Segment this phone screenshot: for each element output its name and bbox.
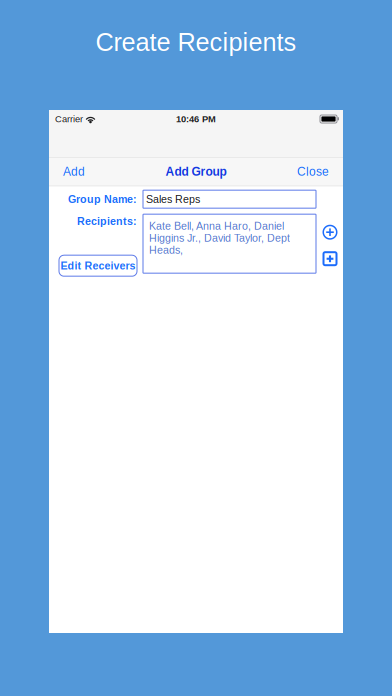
- button[interactable]: Edit Receivers: [59, 255, 137, 276]
- staticText: Create Recipients: [95, 28, 296, 56]
- staticText: Group Name:: [68, 193, 137, 205]
- staticText: Carrier: [55, 114, 83, 124]
- staticText: Add: [63, 165, 85, 178]
- button[interactable]: Sales Reps: [143, 190, 316, 208]
- button[interactable]: Add group: [323, 252, 336, 265]
- staticText: Edit Receivers: [60, 260, 135, 272]
- button[interactable]: Add recipient: [323, 225, 337, 239]
- staticText: Kate Bell, Anna Haro, Daniel Higgins Jr.…: [149, 220, 290, 256]
- button[interactable]: Kate Bell, Anna Haro, Daniel Higgins Jr.…: [143, 214, 316, 273]
- staticText: Add Group: [165, 165, 226, 178]
- staticText: Sales Reps: [146, 193, 200, 205]
- staticText: Recipients:: [77, 215, 137, 227]
- staticText: 10:46 PM: [176, 114, 216, 124]
- button[interactable]: Add: [57, 160, 91, 183]
- staticText: Close: [297, 165, 329, 178]
- button[interactable]: Close: [291, 160, 335, 183]
